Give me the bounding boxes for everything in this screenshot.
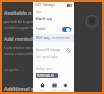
staticText: Account & storage: [36, 48, 61, 52]
button[interactable]: Lists: [49, 82, 59, 92]
button[interactable]: Settings: [60, 82, 70, 92]
staticText: Enable: [36, 27, 46, 31]
staticText: tap to create a new entry: [4, 46, 40, 50]
staticText: Additional s: [4, 86, 34, 92]
staticText: Available n: [4, 10, 32, 17]
other: Search: [85, 14, 99, 28]
staticText: 9:41: [35, 3, 41, 7]
button[interactable]: Enable sync toggle: [62, 27, 71, 32]
staticText: Backup name: [36, 67, 53, 71]
button[interactable]: PERSONAL-01: [36, 73, 58, 78]
staticText: Home: [39, 89, 46, 92]
staticText: Lists: [52, 89, 57, 92]
button[interactable]: Enable: [33, 25, 74, 33]
staticText: reminders appear here: [4, 26, 37, 30]
button[interactable]: Home: [37, 82, 47, 92]
staticText: Wi-Fi only: [36, 36, 50, 40]
staticText: Settings: [43, 3, 55, 7]
staticText: Back up: [36, 16, 53, 22]
staticText: recommended: [52, 36, 70, 40]
staticText: Last synced today: [36, 55, 58, 59]
staticText: your task list is synced: [4, 20, 36, 24]
staticText: choose a date and time: [4, 52, 37, 56]
button[interactable]: Wi-Fi only: [33, 34, 74, 42]
staticText: Settings: [61, 89, 70, 92]
staticText: categories: [4, 68, 19, 72]
staticText: PERSONAL-01: [37, 74, 55, 78]
staticText: Add reminde: [4, 36, 36, 43]
button[interactable]: Account & storage: [33, 46, 74, 54]
button[interactable]: Info: [66, 48, 71, 53]
staticText: Sync: [36, 10, 42, 14]
